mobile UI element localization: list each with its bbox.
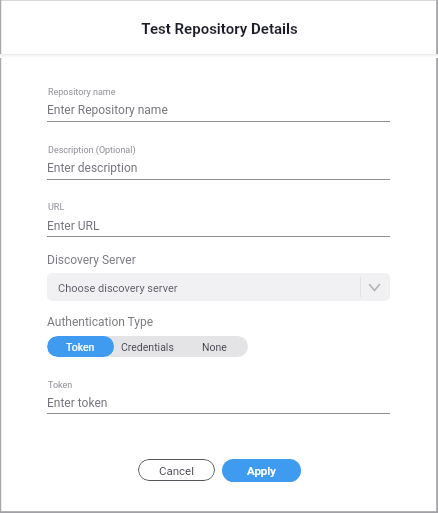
button[interactable]: Cancel — [138, 459, 215, 481]
button[interactable]: Choose discovery server — [47, 273, 390, 301]
staticText: Enter description — [47, 161, 138, 175]
button[interactable]: Apply — [222, 459, 301, 482]
button[interactable]: None — [181, 336, 248, 357]
staticText: Credentials — [121, 341, 174, 353]
staticText: Enter Repository name — [47, 103, 168, 117]
staticText: None — [202, 341, 227, 353]
staticText: Token — [48, 380, 73, 391]
staticText: Choose discovery server — [58, 282, 178, 295]
staticText: Test Repository Details — [141, 20, 298, 38]
button[interactable]: Credentials — [114, 336, 181, 357]
staticText: Token — [66, 341, 95, 353]
staticText: Cancel — [159, 464, 195, 477]
staticText: Authentication Type — [47, 315, 154, 329]
staticText: Enter token — [47, 396, 108, 410]
staticText: Discovery Server — [47, 253, 136, 267]
staticText: Apply — [247, 464, 276, 477]
staticText: Description (Optional) — [48, 145, 136, 156]
staticText: Enter URL — [47, 219, 100, 233]
button[interactable]: Token — [47, 336, 114, 357]
staticText: URL — [48, 202, 65, 213]
staticText: Repository name — [48, 87, 116, 98]
